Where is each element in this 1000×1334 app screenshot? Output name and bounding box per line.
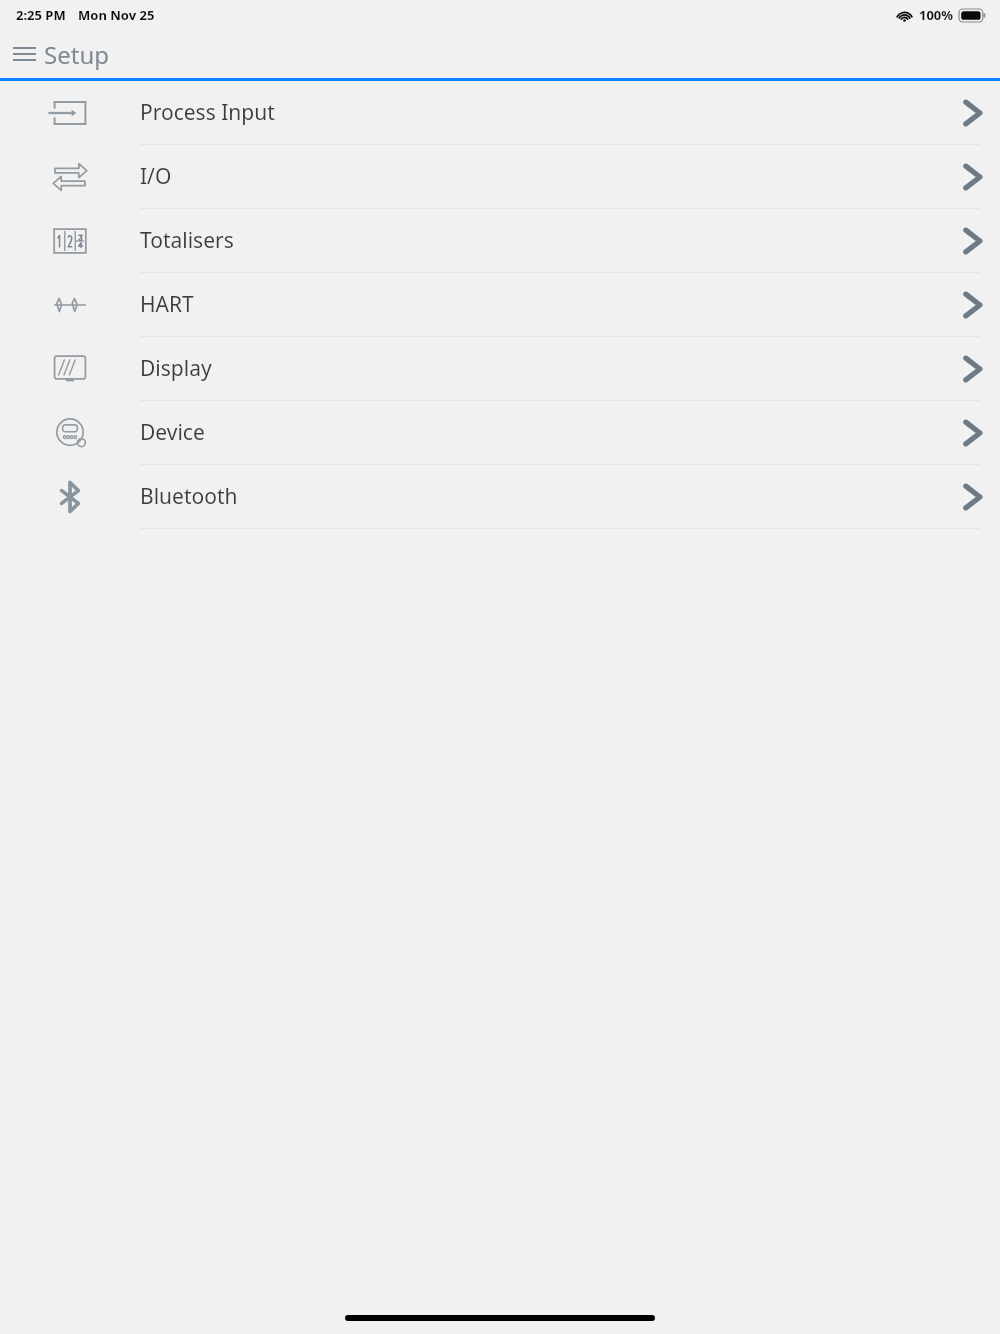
staticText: 2:25 PM: [16, 6, 66, 24]
staticText: I/O: [140, 162, 943, 191]
staticText: Mon Nov 25: [78, 6, 155, 24]
button[interactable]: HART: [0, 273, 1000, 336]
staticText: Setup: [44, 38, 109, 71]
button[interactable]: I/O: [0, 145, 1000, 208]
button[interactable]: Process Input: [0, 81, 1000, 144]
button[interactable]: Menu: [2, 32, 46, 76]
staticText: Device: [140, 418, 943, 447]
staticText: Process Input: [140, 98, 943, 127]
button[interactable]: Device: [0, 401, 1000, 464]
staticText: Bluetooth: [140, 482, 943, 511]
button[interactable]: Display: [0, 337, 1000, 400]
staticText: Totalisers: [140, 226, 943, 255]
button[interactable]: Totalisers: [0, 209, 1000, 272]
staticText: Display: [140, 354, 943, 383]
button[interactable]: Bluetooth: [0, 465, 1000, 528]
staticText: 100%: [919, 6, 954, 24]
staticText: HART: [140, 290, 943, 319]
